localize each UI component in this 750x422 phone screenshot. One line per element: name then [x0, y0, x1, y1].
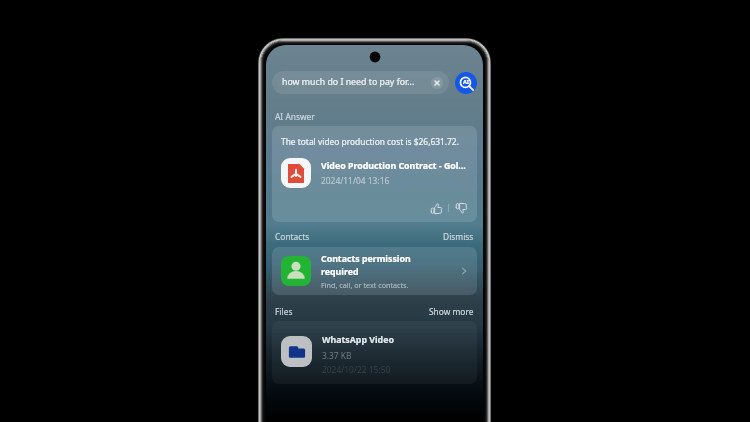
staticText: The total video production cost is $26,6…	[281, 136, 459, 147]
staticText: Find, call, or text contacts.	[321, 280, 409, 290]
staticText: 2024/10/22 15:50	[322, 364, 391, 375]
staticText: Video Production Contract - Gol...	[321, 160, 466, 172]
button[interactable]: how much do I need to pay for...	[272, 71, 449, 94]
button[interactable]: WhatsApp Video	[272, 321, 477, 384]
staticText: required	[321, 266, 359, 278]
button[interactable]: Thumbs down	[454, 201, 468, 215]
button[interactable]: Thumbs up	[429, 201, 443, 215]
button[interactable]: Contacts permission	[272, 247, 477, 295]
staticText: 3.37 KB	[322, 350, 352, 361]
button[interactable]: Clear query	[431, 77, 443, 89]
button[interactable]: AI search	[455, 72, 477, 94]
staticText: Contacts	[275, 231, 310, 242]
staticText: Contacts permission	[321, 253, 411, 265]
button[interactable]: Dismiss	[443, 231, 474, 242]
staticText: how much do I need to pay for...	[282, 76, 429, 88]
button[interactable]: Show more	[429, 306, 474, 317]
staticText: AI Answer	[275, 111, 315, 122]
staticText: AI	[463, 78, 470, 86]
staticText: WhatsApp Video	[322, 334, 394, 346]
staticText: 2024/11/04 13:16	[321, 175, 390, 186]
staticText: Files	[275, 306, 293, 317]
button[interactable]: The total video production cost is $26,6…	[272, 126, 477, 222]
